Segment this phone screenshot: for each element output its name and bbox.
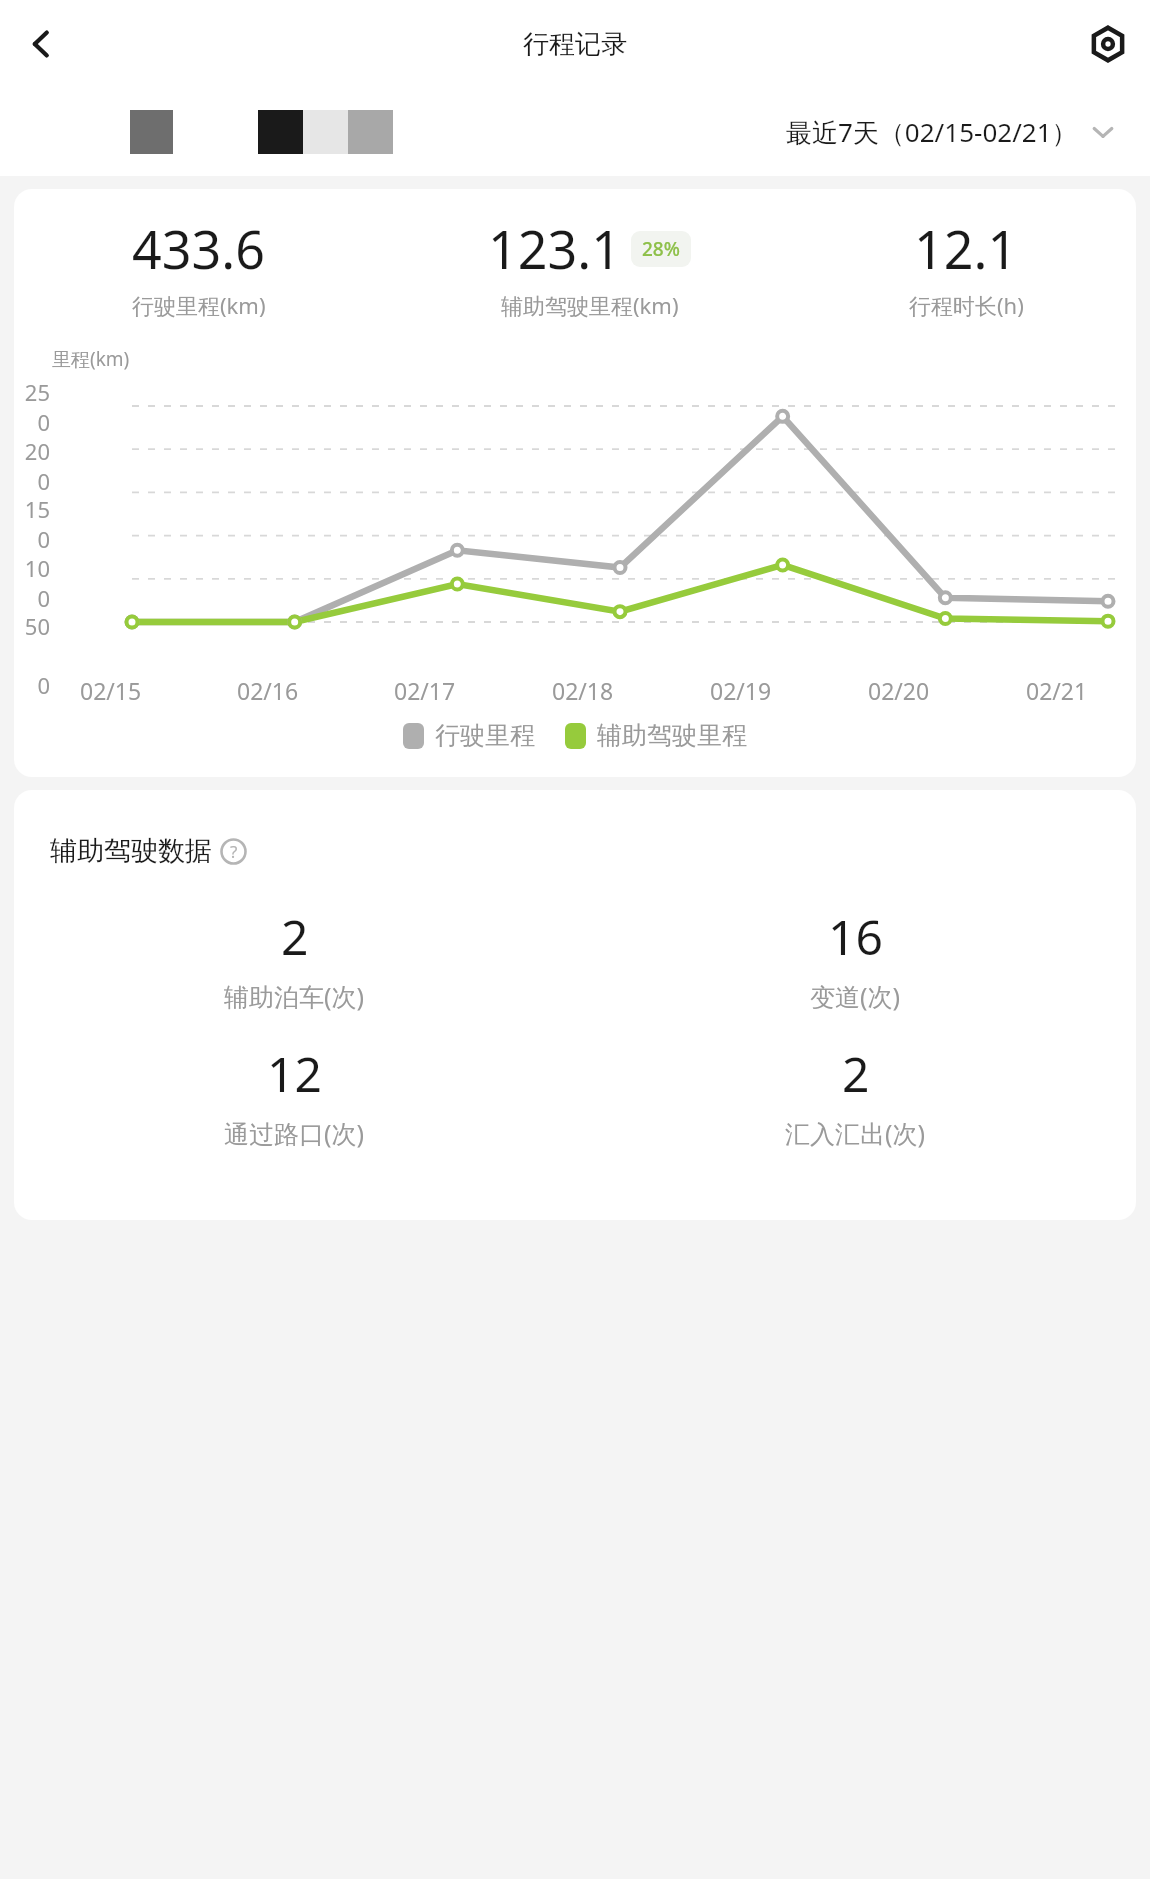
staticText: 28%: [642, 236, 680, 262]
button[interactable]: 最近7天（02/15-02/21）: [786, 114, 1114, 150]
staticText: 150: [14, 494, 50, 554]
button[interactable]: 16: [575, 904, 1136, 1013]
staticText: 50: [14, 611, 50, 641]
staticText: 100: [14, 553, 50, 613]
staticText: 02/17: [394, 675, 456, 706]
staticText: 2: [281, 904, 309, 969]
staticText: 行程记录: [523, 28, 627, 61]
staticText: 02/19: [710, 675, 772, 706]
staticText: 行程时长(h): [909, 290, 1024, 320]
staticText: 433.6: [132, 213, 265, 284]
button[interactable]: Help: [220, 838, 247, 865]
staticText: 02/16: [237, 675, 299, 706]
staticText: 最近7天（02/15-02/21）: [786, 114, 1078, 150]
staticText: 250: [14, 377, 50, 437]
staticText: 123.1: [488, 213, 621, 284]
staticText: 12.1: [914, 213, 1018, 284]
staticText: 02/18: [552, 675, 614, 706]
staticText: 辅助泊车(次): [224, 979, 365, 1013]
staticText: 通过路口(次): [224, 1116, 365, 1150]
button[interactable]: 12: [14, 1041, 575, 1150]
button[interactable]: 2: [575, 1041, 1136, 1150]
staticText: 02/20: [868, 675, 930, 706]
staticText: 12: [267, 1041, 322, 1106]
staticText: 辅助驾驶里程: [597, 720, 747, 751]
staticText: 200: [14, 436, 50, 496]
staticText: 辅助驾驶数据: [50, 834, 212, 868]
staticText: 0: [14, 670, 50, 700]
staticText: 2: [842, 1041, 870, 1106]
staticText: 行驶里程: [435, 720, 535, 751]
staticText: 16: [828, 904, 883, 969]
button[interactable]: Back: [14, 16, 70, 72]
staticText: 02/21: [1026, 675, 1088, 706]
button[interactable]: Settings: [1080, 16, 1136, 72]
staticText: ?: [230, 840, 238, 863]
staticText: 辅助驾驶里程(km): [501, 290, 679, 320]
button[interactable]: 2: [14, 904, 575, 1013]
staticText: 汇入汇出(次): [785, 1116, 926, 1150]
staticText: 行驶里程(km): [132, 290, 266, 320]
staticText: 02/15: [80, 675, 142, 706]
staticText: 变道(次): [810, 979, 901, 1013]
staticText: 里程(km): [52, 346, 130, 372]
